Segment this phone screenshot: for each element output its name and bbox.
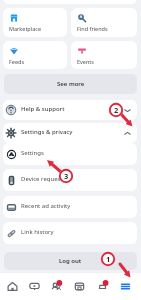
staticText: Log out (59, 257, 82, 265)
button[interactable]: Events (71, 41, 137, 69)
button[interactable]: Settings & privacy (3, 123, 137, 143)
staticText: Settings (21, 149, 44, 157)
staticText: Marketplace (9, 25, 41, 32)
button[interactable]: Friends (45, 273, 68, 300)
button[interactable]: Link history (3, 222, 137, 244)
staticText: Device requests (21, 175, 66, 183)
button[interactable]: Help & support (3, 100, 137, 120)
staticText: Help & support (21, 105, 65, 113)
button[interactable]: Settings (3, 143, 137, 165)
button[interactable]: Find friends (71, 8, 137, 37)
button[interactable]: Feeds (3, 41, 67, 69)
button[interactable]: Notifications (91, 273, 114, 300)
staticText: Find friends (77, 25, 108, 32)
staticText: Settings & privacy (21, 128, 73, 136)
button[interactable]: Home (1, 273, 23, 300)
staticText: Feeds (9, 58, 25, 65)
staticText: See more (57, 80, 85, 88)
staticText: 3 (64, 171, 69, 181)
button[interactable]: See more (4, 74, 137, 94)
staticText: 1 (106, 254, 111, 264)
staticText: Recent ad activity (21, 202, 71, 210)
button[interactable]: Menu (114, 273, 137, 300)
button[interactable]: Marketplace (3, 8, 67, 37)
staticText: Link history (21, 228, 54, 236)
button[interactable]: Device requests (3, 169, 137, 191)
button[interactable]: Log out (4, 252, 137, 270)
staticText: Events (77, 58, 94, 65)
button[interactable]: Marketplace (68, 273, 91, 300)
button[interactable]: Recent ad activity (3, 196, 137, 218)
button[interactable]: Video (23, 273, 45, 300)
staticText: 2 (114, 105, 119, 115)
